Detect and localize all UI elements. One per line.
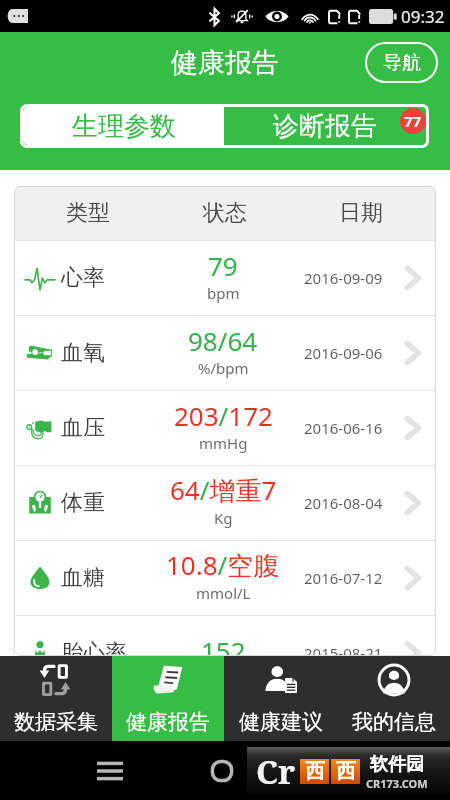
staticText: 2016-09-06	[304, 343, 383, 363]
staticText: 2015-08-21	[304, 643, 383, 656]
staticText: 健康报告	[171, 46, 279, 80]
other: Menu	[97, 761, 123, 781]
button[interactable]: 血压	[14, 391, 436, 465]
staticText: 日期	[339, 199, 383, 227]
staticText: 诊断报告	[273, 110, 377, 143]
staticText: 10.8/空腹	[166, 547, 280, 583]
staticText: mmol/L	[196, 583, 251, 603]
button[interactable]: 诊断报告	[224, 107, 426, 145]
staticText: 152	[201, 633, 246, 656]
staticText: %/bpm	[198, 358, 249, 378]
staticText: CR173.COM	[366, 776, 428, 791]
staticText: 77	[404, 111, 422, 131]
staticText: Kg	[214, 508, 233, 528]
staticText: mmHg	[199, 433, 248, 453]
staticText: 203/172	[174, 398, 273, 433]
staticText: 西	[336, 759, 356, 784]
staticText: 98/64	[188, 323, 258, 358]
button[interactable]: 健康报告	[112, 656, 224, 741]
staticText: 数据采集	[14, 709, 98, 735]
staticText: Cr	[256, 749, 296, 794]
staticText: 健康报告	[126, 709, 210, 735]
button[interactable]: 心率	[14, 241, 436, 315]
staticText: 生理参数	[72, 110, 176, 143]
staticText: 心率	[61, 264, 105, 292]
staticText: 软件园	[370, 753, 424, 776]
staticText: 2016-08-04	[304, 493, 383, 513]
staticText: 状态	[203, 199, 247, 227]
button[interactable]: 生理参数	[23, 107, 224, 145]
button[interactable]: 血糖	[14, 541, 436, 615]
staticText: 西	[305, 759, 325, 784]
staticText: 类型	[66, 199, 110, 227]
staticText: 我的信息	[352, 709, 436, 735]
button[interactable]: 导航	[365, 42, 438, 83]
button[interactable]: 血氧	[14, 316, 436, 390]
button[interactable]: 胎心率	[14, 616, 436, 656]
staticText: 79	[208, 248, 238, 283]
other: Home	[210, 759, 234, 783]
staticText: 2016-07-12	[304, 568, 383, 588]
staticText: 2016-09-09	[304, 268, 383, 288]
staticText: 血氧	[61, 339, 105, 367]
staticText: 胎心率	[61, 639, 127, 656]
button[interactable]: 体重	[14, 466, 436, 540]
staticText: bpm	[207, 283, 240, 303]
staticText: 09:32	[401, 5, 445, 28]
staticText: 体重	[61, 489, 105, 517]
staticText: 导航	[383, 51, 421, 75]
staticText: 血糖	[61, 564, 105, 592]
staticText: 健康建议	[239, 709, 323, 735]
button[interactable]: 我的信息	[337, 656, 450, 741]
button[interactable]: 健康建议	[224, 656, 337, 741]
staticText: 64/增重7	[170, 472, 277, 508]
button[interactable]: 数据采集	[0, 656, 112, 741]
staticText: 2016-06-16	[304, 418, 383, 438]
staticText: 血压	[61, 414, 105, 442]
